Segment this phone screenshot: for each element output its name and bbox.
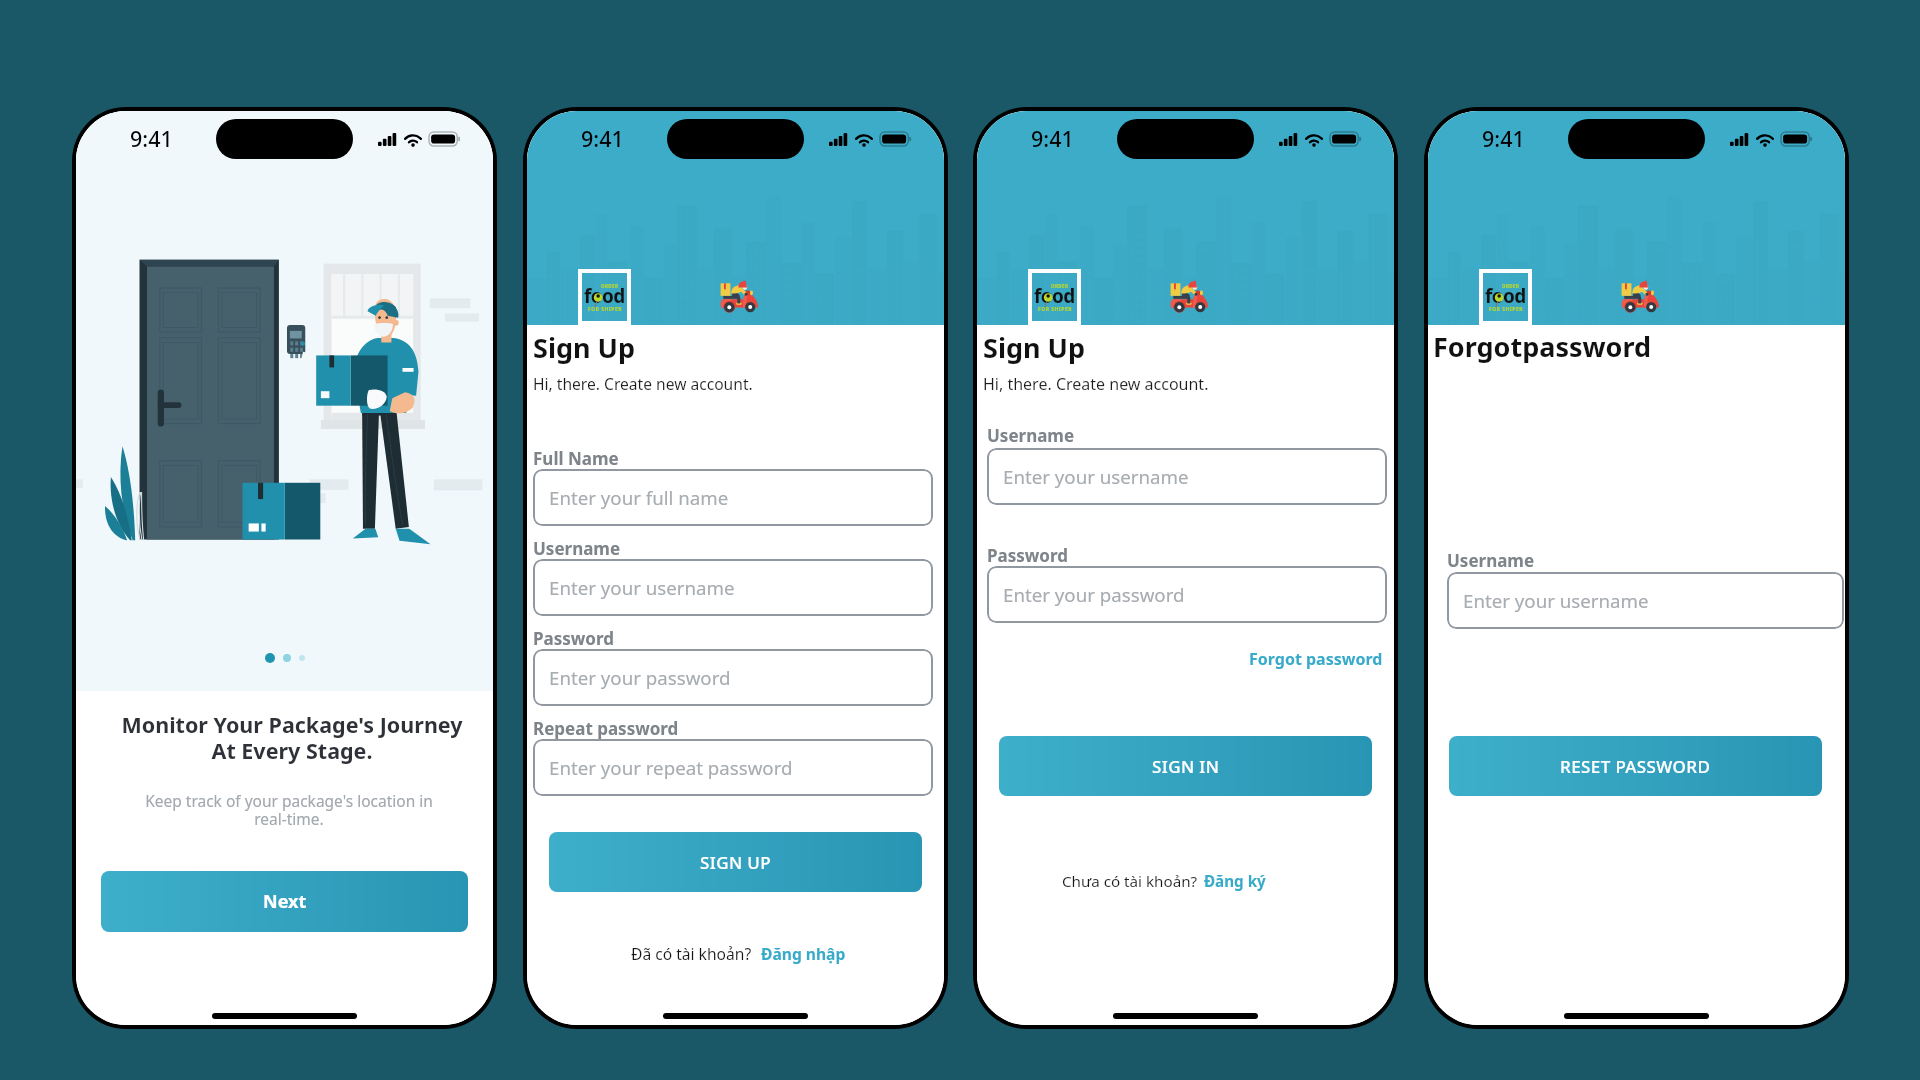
staticText: FOR SHIPER: [588, 306, 622, 313]
staticText: Enter your username: [1463, 588, 1649, 613]
staticText: food: [584, 283, 625, 309]
staticText: SIGN UP: [700, 851, 772, 874]
button[interactable]: Page 1: [265, 653, 275, 663]
staticText: Forgotpassword: [1433, 328, 1652, 365]
button[interactable]: RESET PASSWORD: [1449, 736, 1822, 796]
button[interactable]: Forgot password: [1249, 648, 1383, 670]
staticText: real-time.: [76, 808, 493, 829]
button[interactable]: Enter your password: [533, 649, 933, 706]
staticText: Monitor Your Package's Journey: [76, 710, 493, 739]
button[interactable]: Đăng ký: [1204, 871, 1266, 892]
staticText: ORDER: [1502, 283, 1520, 289]
staticText: Enter your password: [549, 665, 731, 690]
staticText: Username: [987, 424, 1075, 447]
staticText: Password: [533, 627, 614, 650]
staticText: Sign Up: [983, 329, 1086, 366]
staticText: FOR SHIPER: [1038, 306, 1072, 313]
staticText: Username: [1447, 549, 1535, 572]
button[interactable]: Enter your username: [987, 448, 1387, 505]
button[interactable]: Page 2: [283, 654, 291, 662]
button[interactable]: Enter your username: [1447, 572, 1844, 629]
button[interactable]: Food for shipper logo: [578, 269, 631, 325]
staticText: ORDER: [1051, 283, 1069, 289]
staticText: Hi, there. Create new account.: [983, 373, 1209, 395]
staticText: Enter your password: [1003, 582, 1185, 607]
staticText: Repeat password: [533, 717, 679, 740]
staticText: 9:41: [130, 124, 173, 153]
staticText: Enter your full name: [549, 485, 729, 510]
staticText: ORDER: [601, 283, 619, 289]
button[interactable]: Đăng nhập: [761, 943, 846, 964]
button[interactable]: Next: [101, 871, 468, 932]
staticText: RESET PASSWORD: [1560, 755, 1711, 778]
staticText: Đăng ký: [1204, 871, 1266, 892]
staticText: Chưa có tài khoản?: [1062, 871, 1198, 892]
button[interactable]: Food for shipper logo: [1028, 269, 1081, 325]
button[interactable]: Delivery scooter: [720, 279, 758, 312]
staticText: SIGN IN: [1152, 755, 1220, 778]
staticText: food: [1485, 283, 1526, 309]
staticText: Forgot password: [1249, 648, 1383, 670]
staticText: Sign Up: [533, 329, 636, 366]
staticText: Enter your repeat password: [549, 755, 793, 780]
button[interactable]: Delivery scooter: [1170, 279, 1208, 312]
staticText: Hi, there. Create new account.: [533, 373, 753, 394]
staticText: 9:41: [1031, 124, 1074, 153]
staticText: FOR SHIPER: [1489, 306, 1523, 313]
staticText: Username: [533, 537, 621, 560]
staticText: 9:41: [1482, 124, 1525, 153]
button[interactable]: SIGN IN: [999, 736, 1372, 796]
staticText: Next: [263, 889, 307, 914]
staticText: Đăng nhập: [761, 943, 846, 964]
button[interactable]: Enter your password: [987, 566, 1387, 623]
button[interactable]: Page 3: [299, 655, 305, 661]
staticText: Full Name: [533, 447, 619, 470]
button[interactable]: Enter your repeat password: [533, 739, 933, 796]
staticText: At Every Stage.: [76, 736, 493, 765]
button[interactable]: Food for shipper logo: [1479, 269, 1532, 325]
staticText: 9:41: [581, 124, 624, 153]
button[interactable]: SIGN UP: [549, 832, 922, 892]
staticText: Đã có tài khoản?: [631, 943, 752, 964]
staticText: Password: [987, 544, 1068, 567]
button[interactable]: Enter your full name: [533, 469, 933, 526]
staticText: Keep track of your package's location in: [76, 790, 493, 811]
staticText: Enter your username: [1003, 464, 1189, 489]
staticText: Enter your username: [549, 575, 735, 600]
button[interactable]: Delivery scooter: [1621, 279, 1659, 312]
staticText: food: [1034, 283, 1075, 309]
button[interactable]: Enter your username: [533, 559, 933, 616]
